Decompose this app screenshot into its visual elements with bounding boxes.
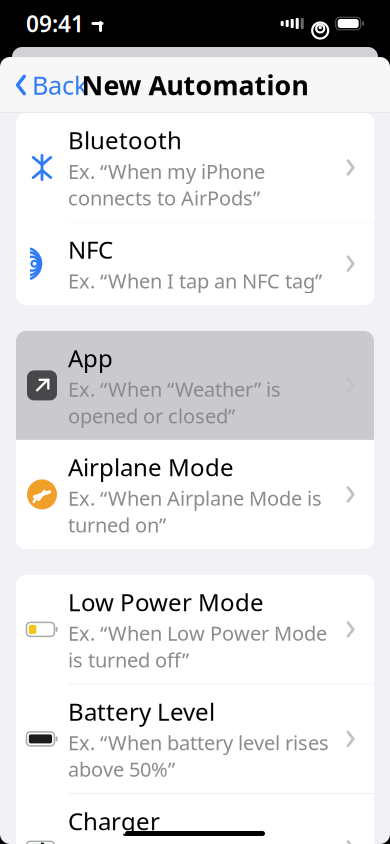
staticText: App <box>68 342 113 374</box>
button[interactable]: NFC <box>16 222 374 305</box>
staticText: Ex. “When my iPhone connects to AirPods” <box>68 158 265 211</box>
staticText: Charger <box>68 805 160 837</box>
staticText: Airplane Mode <box>68 451 234 483</box>
staticText: Low Power Mode <box>68 586 264 618</box>
staticText: 09:41 <box>26 8 84 38</box>
staticText: Bluetooth <box>68 124 182 156</box>
staticText: Ex. “When Airplane Mode is turned on” <box>68 485 322 538</box>
staticText: Ex. “When battery level rises above 50%” <box>68 729 329 782</box>
button[interactable]: Airplane Mode <box>16 440 374 549</box>
staticText: Battery Level <box>68 695 215 727</box>
staticText: Ex. “When “Weather” is opened or closed” <box>68 376 281 429</box>
button[interactable]: Charger <box>16 794 374 844</box>
button[interactable]: App <box>16 331 374 440</box>
button[interactable]: Back <box>0 58 88 112</box>
button[interactable]: Low Power Mode <box>16 575 374 684</box>
button[interactable]: Battery Level <box>16 684 374 793</box>
staticText: Ex. “When I tap an NFC tag” <box>68 267 322 294</box>
button[interactable]: Bluetooth <box>16 113 374 222</box>
staticText: NFC <box>68 233 113 265</box>
staticText: New Automation <box>81 67 308 103</box>
staticText: Ex. “When Low Power Mode is turned off” <box>68 620 327 673</box>
staticText: Back <box>32 68 88 102</box>
